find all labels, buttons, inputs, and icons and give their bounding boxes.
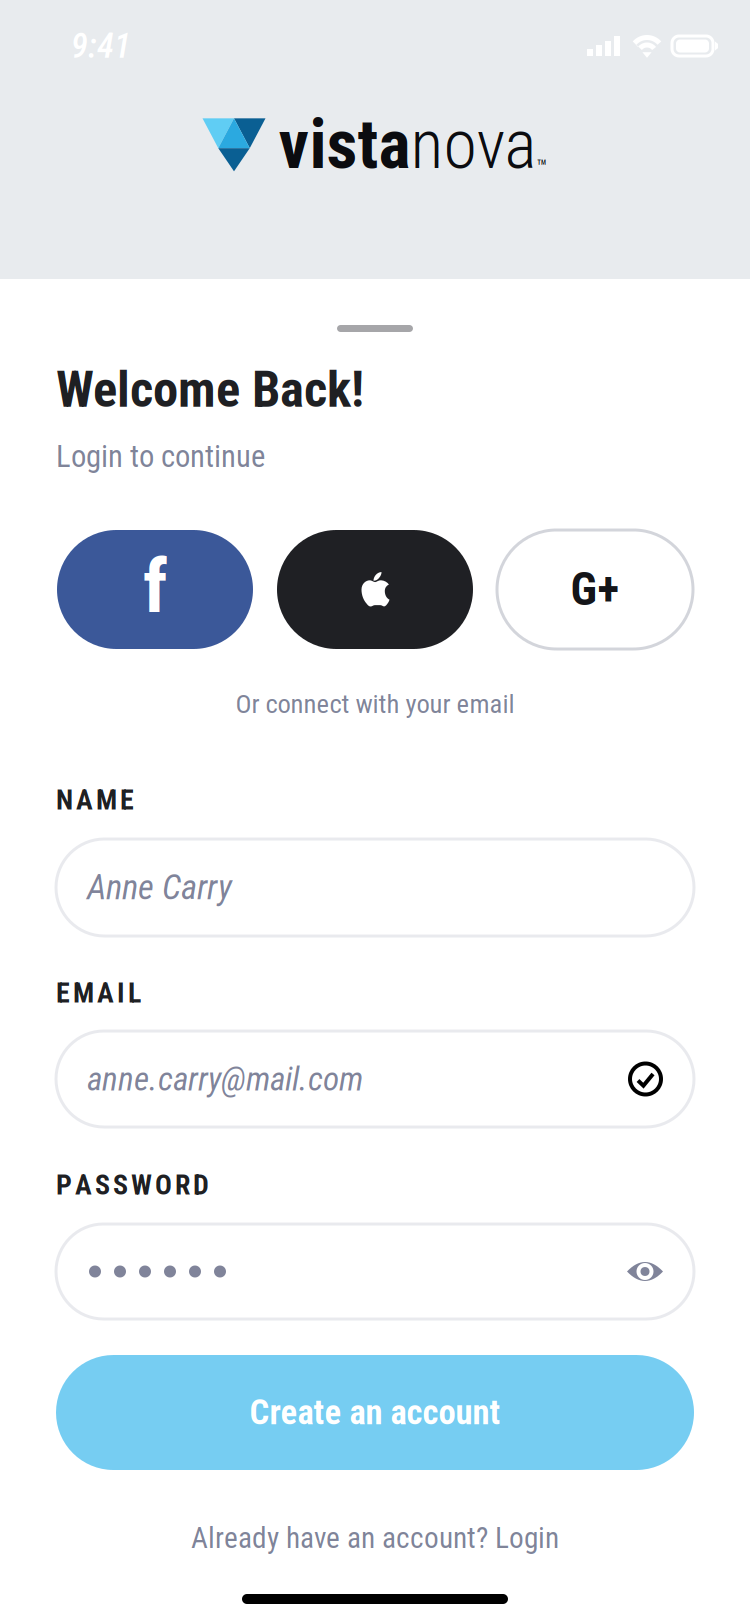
button[interactable]: Already have an account? Login <box>191 1521 559 1555</box>
staticText: G+ <box>570 563 619 616</box>
staticText: N A M E <box>56 784 134 816</box>
button[interactable]: Continue with Google <box>497 530 693 649</box>
staticText: Login to continue <box>56 438 265 474</box>
button[interactable]: Create an account <box>56 1355 694 1470</box>
staticText: P A S S W O R D <box>56 1169 209 1201</box>
staticText: nova <box>410 105 536 185</box>
staticText: vista <box>278 105 410 185</box>
staticText: 9:41 <box>71 26 131 66</box>
button[interactable]: Continue with Apple <box>277 530 473 649</box>
staticText: Already have an account? Login <box>191 1521 559 1555</box>
staticText: anne.carry@mail.com <box>87 1059 363 1099</box>
staticText: E M A I L <box>56 977 141 1009</box>
staticText: Create an account <box>249 1392 500 1433</box>
staticText: Anne Carry <box>87 867 232 908</box>
staticText: Welcome Back! <box>56 360 364 419</box>
button[interactable]: Continue with Facebook <box>57 530 253 649</box>
staticText: f <box>143 543 167 630</box>
staticText: ™ <box>536 155 547 179</box>
staticText: Or connect with your email <box>235 688 514 720</box>
